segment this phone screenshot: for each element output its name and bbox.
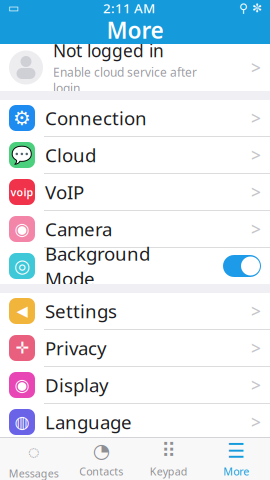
button[interactable]: Not logged in: [0, 44, 270, 91]
button[interactable]: ⚙: [0, 100, 270, 136]
staticText: Cloud: [45, 143, 96, 167]
staticText: >: [251, 106, 261, 129]
staticText: Contacts: [79, 464, 123, 478]
staticText: >: [251, 299, 261, 322]
staticText: 💬: [11, 145, 33, 165]
staticText: >: [251, 56, 261, 79]
staticText: ▭: [8, 1, 19, 15]
staticText: Camera: [45, 217, 112, 241]
staticText: >: [251, 410, 261, 433]
staticText: Enable cloud service after login: [53, 64, 197, 96]
button[interactable]: ◎: [0, 248, 270, 284]
staticText: ⚙: [13, 107, 31, 129]
button[interactable]: ◀: [0, 293, 270, 329]
button[interactable]: ☰: [202, 438, 270, 480]
staticText: ◎: [14, 255, 30, 277]
staticText: Display: [45, 373, 109, 397]
button[interactable]: voip: [0, 174, 270, 210]
staticText: 2:11 AM: [103, 0, 155, 17]
staticText: Settings: [45, 299, 117, 323]
staticText: Connection: [45, 106, 147, 130]
staticText: ☰: [227, 440, 245, 462]
staticText: Language: [45, 410, 132, 434]
staticText: ◔: [93, 440, 110, 462]
staticText: ◉: [14, 375, 29, 395]
staticText: Privacy: [45, 336, 107, 360]
staticText: ◌: [28, 438, 40, 464]
button[interactable]: ✛: [0, 330, 270, 366]
staticText: >: [251, 217, 261, 240]
staticText: ⚲ ✼: [239, 1, 262, 15]
staticText: More: [223, 464, 249, 478]
staticText: >: [251, 180, 261, 203]
button[interactable]: ◉: [0, 211, 270, 247]
button[interactable]: ◌: [0, 438, 67, 480]
staticText: Background Mode: [45, 241, 150, 291]
staticText: >: [251, 143, 261, 166]
staticText: >: [251, 336, 261, 359]
staticText: Keypad: [150, 464, 188, 478]
staticText: Messages: [9, 466, 59, 480]
staticText: VoIP: [45, 180, 84, 204]
button[interactable]: 💬: [0, 137, 270, 173]
button[interactable]: ⠿: [135, 438, 202, 480]
staticText: ✛: [15, 339, 28, 357]
staticText: voip: [10, 185, 33, 199]
staticText: More: [106, 15, 163, 45]
staticText: ◍: [14, 412, 29, 432]
staticText: ⠿: [161, 440, 176, 462]
staticText: ◀: [16, 303, 27, 319]
staticText: ◉: [14, 219, 29, 239]
staticText: >: [251, 373, 261, 396]
button[interactable]: ◔: [67, 438, 135, 480]
button[interactable]: ◍: [0, 404, 270, 440]
button[interactable]: ◉: [0, 367, 270, 403]
staticText: Not logged in: [53, 39, 164, 62]
